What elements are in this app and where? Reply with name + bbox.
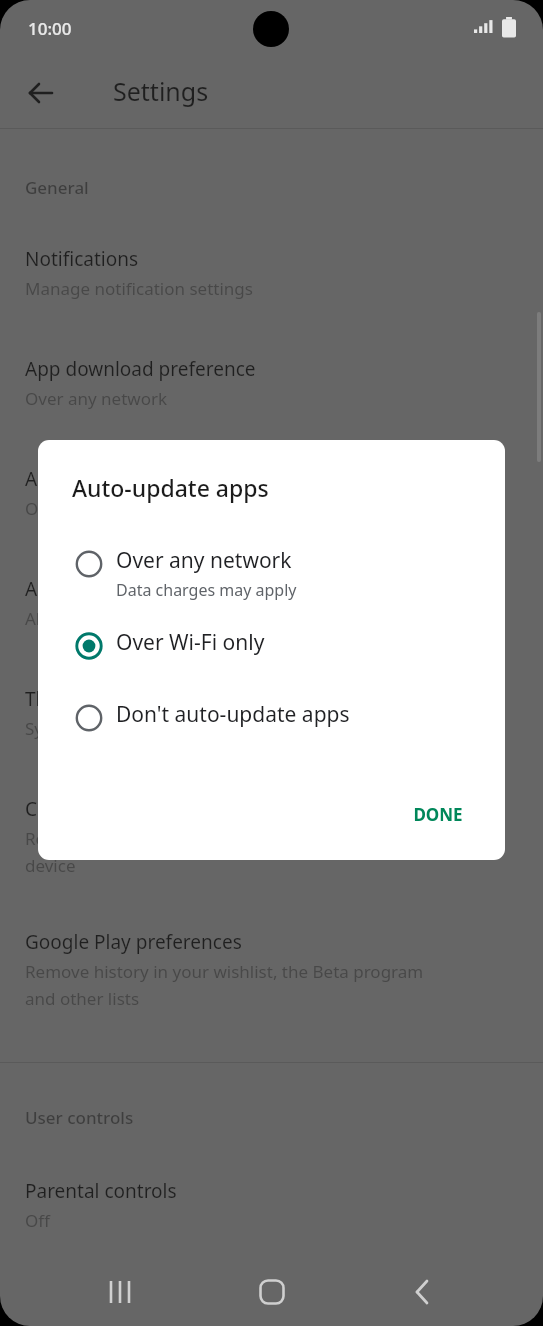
button[interactable]: Auto-play videos [0,554,543,648]
staticText: Don't auto-update apps [116,700,350,729]
staticText: System default [25,717,144,740]
button[interactable]: Google Play preferences [0,907,543,1028]
staticText: Remove history in your wishlist, the Bet… [25,960,424,1010]
staticText: User controls [25,1106,134,1129]
staticText: Theme [25,686,87,712]
staticText: Off [25,1209,50,1232]
button[interactable]: Home [238,1268,306,1316]
staticText: General [25,176,89,199]
staticText: DONE [413,803,463,826]
button[interactable]: Notifications [0,224,543,318]
staticText: Parental controls [25,1178,177,1204]
staticText: Over Wi-Fi only [25,497,146,520]
button[interactable]: Over any network [38,540,505,607]
button[interactable]: Clear local search history [0,774,543,895]
staticText: Settings [113,74,209,108]
staticText: Data charges may apply [116,579,297,601]
staticText: Clear local search history [25,796,248,822]
staticText: Notifications [25,246,139,272]
button[interactable]: Theme [0,664,543,758]
button[interactable]: Don't auto-update apps [38,694,505,737]
staticText: Auto-update apps [72,472,269,503]
button[interactable]: DONE [390,790,486,838]
staticText: Auto-play videos [25,576,173,602]
staticText: 10:00 [28,17,72,40]
button[interactable]: Navigate up [18,70,64,116]
staticText: Over any network [25,387,168,410]
staticText: Always play [25,607,118,630]
staticText: Remove all the searches you have perform… [25,827,444,877]
staticText: Auto-update apps [25,466,185,492]
button[interactable]: Parental controls [0,1156,543,1250]
staticText: Over any network [116,546,292,575]
button[interactable]: Recent apps [86,1268,154,1316]
button[interactable]: Auto-update apps [0,444,543,538]
staticText: Over Wi-Fi only [116,628,265,657]
button[interactable]: App download preference [0,334,543,428]
button[interactable]: Back [390,1268,458,1316]
button[interactable]: Over Wi-Fi only [38,622,505,665]
staticText: Manage notification settings [25,277,253,300]
staticText: App download preference [25,356,256,382]
staticText: Google Play preferences [25,929,242,955]
